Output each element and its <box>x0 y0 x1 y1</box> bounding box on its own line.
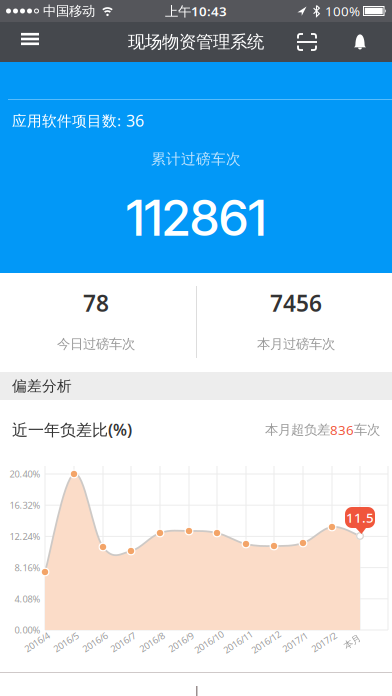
staticText: 20.40% <box>9 468 40 480</box>
staticText: 11.5 <box>346 509 374 526</box>
staticText: 8.16% <box>14 561 40 574</box>
staticText: 16.32% <box>9 499 40 511</box>
staticText: 2016/6 <box>81 636 109 648</box>
staticText: 836 <box>330 421 354 439</box>
staticText: 0.00% <box>14 624 40 636</box>
staticText: 本月过磅车次 <box>257 336 335 352</box>
staticText: 7456 <box>270 288 322 318</box>
staticText: 本月 <box>343 636 361 648</box>
staticText: 2016/11 <box>221 636 254 648</box>
staticText: 78 <box>83 288 109 318</box>
staticText: 偏差分析 <box>12 377 72 395</box>
staticText: 12.24% <box>9 530 40 543</box>
staticText: 上午10:43 <box>165 2 227 20</box>
staticText: 100% <box>325 2 360 20</box>
button[interactable]: 通知 <box>317 22 392 62</box>
staticText: 2016/8 <box>138 636 166 648</box>
staticText: 今日过磅车次 <box>57 336 135 352</box>
staticText: 现场物资管理系统 <box>128 31 264 53</box>
staticText: 2016/10 <box>192 636 225 648</box>
staticText: 112861 <box>126 188 266 248</box>
staticText: 2017/2 <box>310 636 338 648</box>
staticText: 近一年负差比(%) <box>12 419 132 440</box>
staticText: 车次 <box>354 422 380 438</box>
staticText: 2016/4 <box>23 636 51 648</box>
staticText: 2017/1 <box>281 636 309 648</box>
staticText: 2016/5 <box>52 636 80 648</box>
staticText: 2016/7 <box>109 636 137 648</box>
staticText: 36 <box>126 110 144 131</box>
staticText: 4.08% <box>14 593 40 605</box>
staticText: 累计过磅车次 <box>151 150 241 168</box>
button[interactable]: 菜单 <box>0 24 39 60</box>
button[interactable]: 扫一扫 <box>297 22 317 62</box>
staticText: 2016/9 <box>167 636 195 648</box>
staticText: 2016/12 <box>249 636 282 648</box>
staticText: 本月超负差 <box>265 422 330 438</box>
staticText: 中国移动 <box>43 3 95 19</box>
staticText: 应用软件项目数: <box>12 111 121 130</box>
